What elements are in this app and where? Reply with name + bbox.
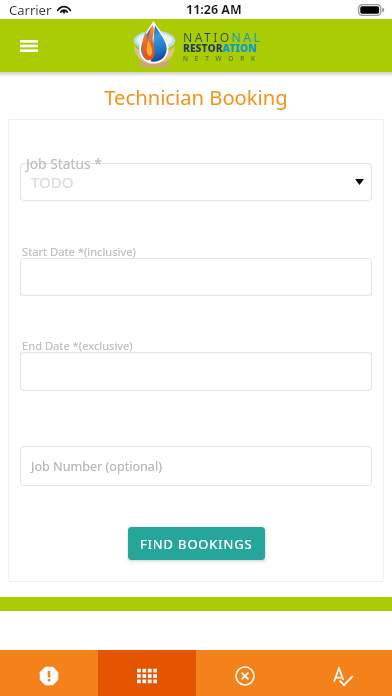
staticText: Carrier: [9, 1, 52, 19]
staticText: 11:26 AM: [186, 1, 242, 18]
button[interactable]: [20, 258, 372, 296]
staticText: TODO: [31, 172, 74, 192]
button[interactable]: Alerts: [0, 650, 98, 696]
staticText: Start Date *(inclusive): [22, 244, 136, 259]
staticText: RESTORATION: [183, 41, 257, 55]
button[interactable]: Menu: [10, 27, 48, 65]
staticText: FIND BOOKINGS: [140, 535, 253, 553]
staticText: End Date *(exclusive): [22, 338, 133, 353]
staticText: NATIONAL: [183, 29, 263, 46]
button[interactable]: [20, 352, 372, 391]
staticText: NETWORK: [183, 54, 262, 63]
button[interactable]: Jobs: [98, 650, 196, 696]
staticText: Technician Booking: [0, 83, 392, 111]
staticText: Job Number (optional): [31, 458, 162, 475]
button[interactable]: FIND BOOKINGS: [128, 527, 265, 560]
button[interactable]: [20, 163, 372, 201]
staticText: Job Status *: [26, 154, 102, 173]
button[interactable]: Spellcheck: [294, 650, 392, 696]
button[interactable]: [20, 446, 372, 486]
button[interactable]: Cancel: [196, 650, 294, 696]
